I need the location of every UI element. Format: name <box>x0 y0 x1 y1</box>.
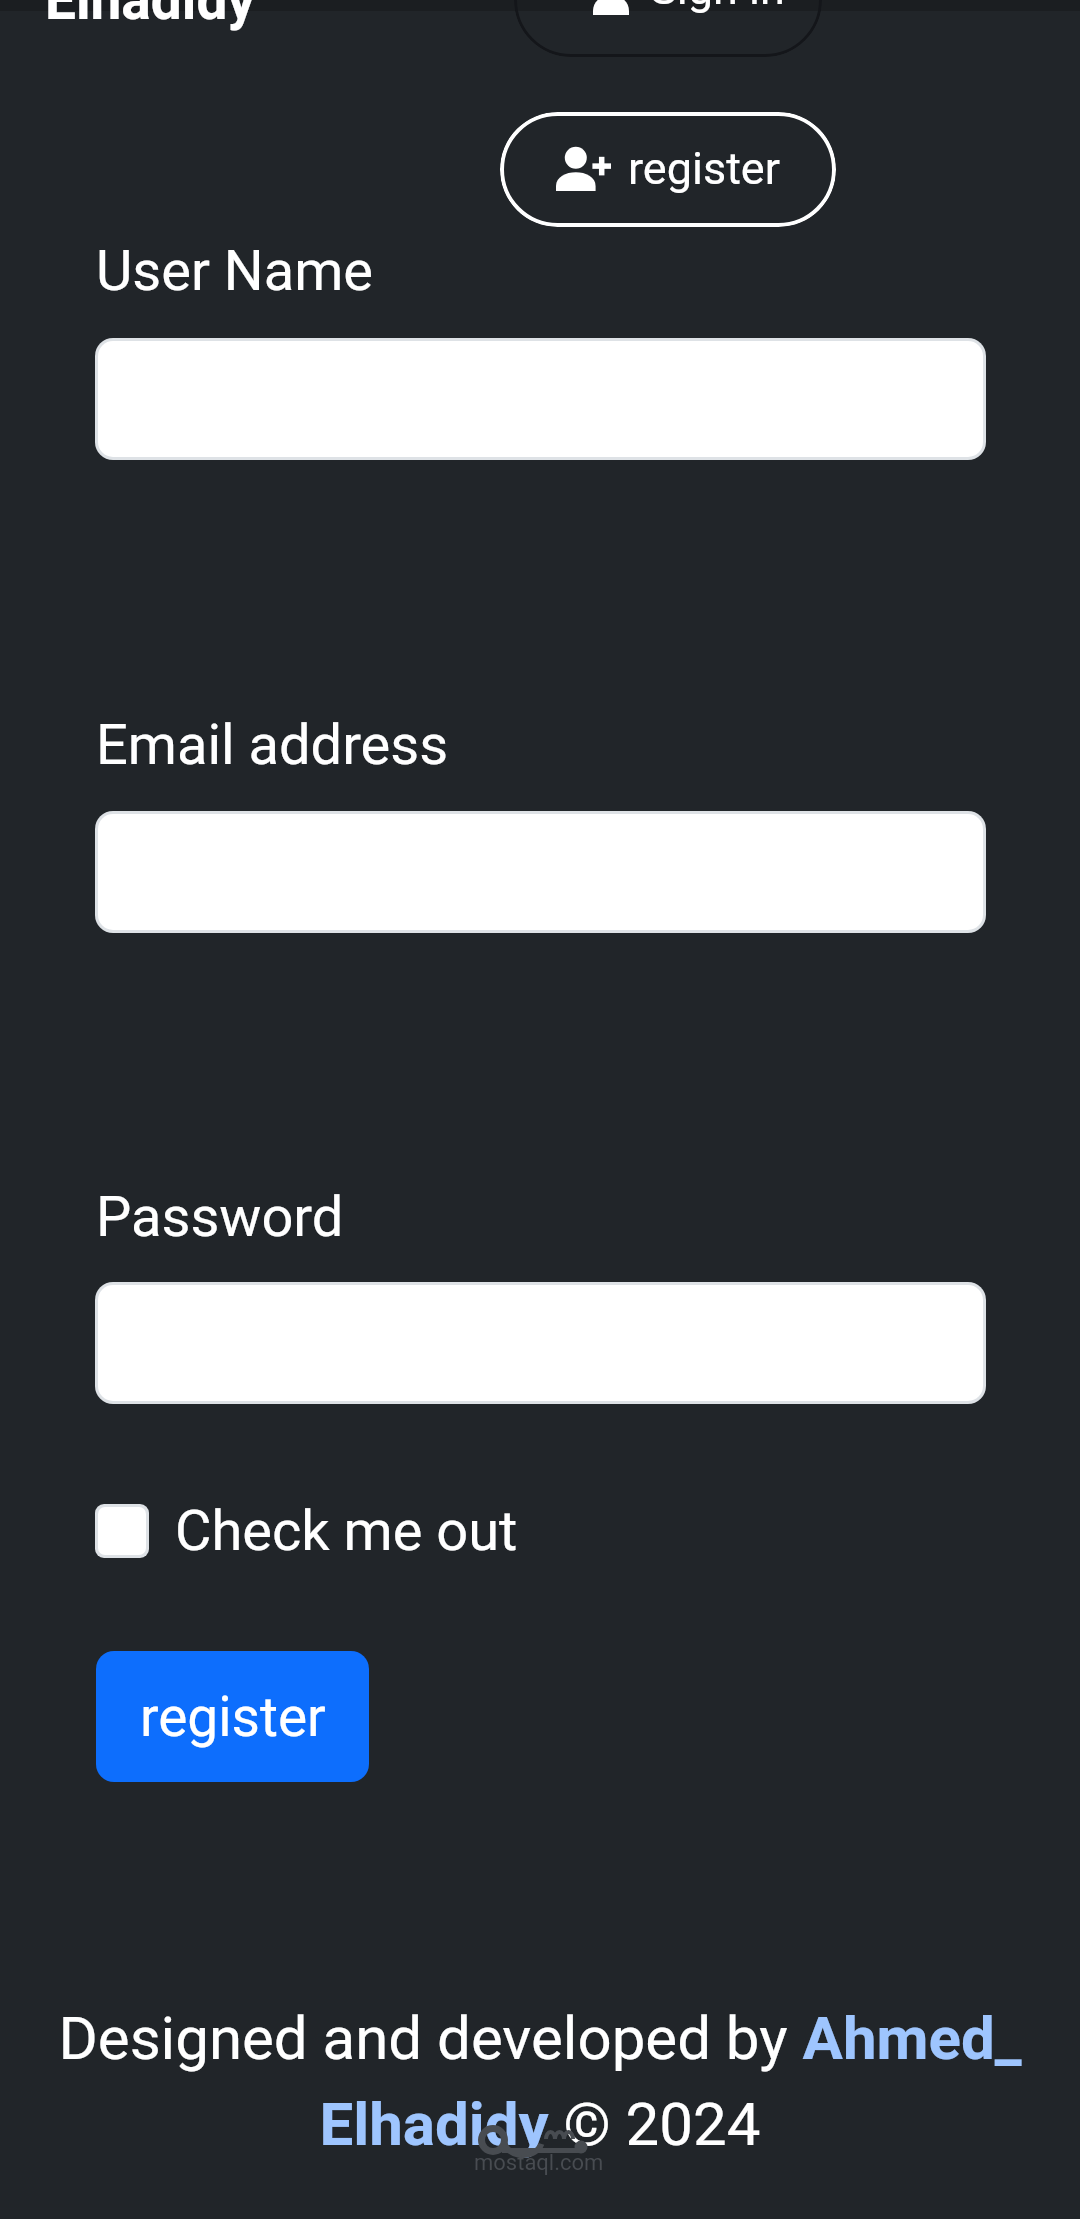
staticText: register <box>140 1685 326 1749</box>
button[interactable] <box>98 1285 983 1401</box>
staticText: Email address <box>96 712 449 778</box>
button[interactable] <box>98 341 983 457</box>
button[interactable]: Register <box>500 112 836 227</box>
button[interactable]: Designed and developed by Ahmed_ Elhadid… <box>20 2003 1060 2160</box>
button[interactable]: Elhadidy <box>45 0 256 32</box>
other: Register <box>554 144 612 194</box>
button[interactable] <box>98 814 983 930</box>
staticText: Password <box>96 1184 344 1250</box>
staticText: Check me out <box>175 1498 518 1564</box>
staticText: User Name <box>96 238 373 304</box>
staticText: register <box>628 142 780 195</box>
staticText: mostaql.com <box>474 2150 604 2176</box>
button[interactable]: Check me out <box>95 1494 518 1568</box>
other: Sign in <box>590 0 636 17</box>
button[interactable]: Sign in <box>514 0 822 57</box>
staticText: Sign in <box>650 0 785 15</box>
staticText: Elhadidy <box>45 0 256 32</box>
button[interactable]: register <box>96 1651 369 1782</box>
staticText: Designed and developed by Ahmed_ Elhadid… <box>20 2003 1060 2160</box>
